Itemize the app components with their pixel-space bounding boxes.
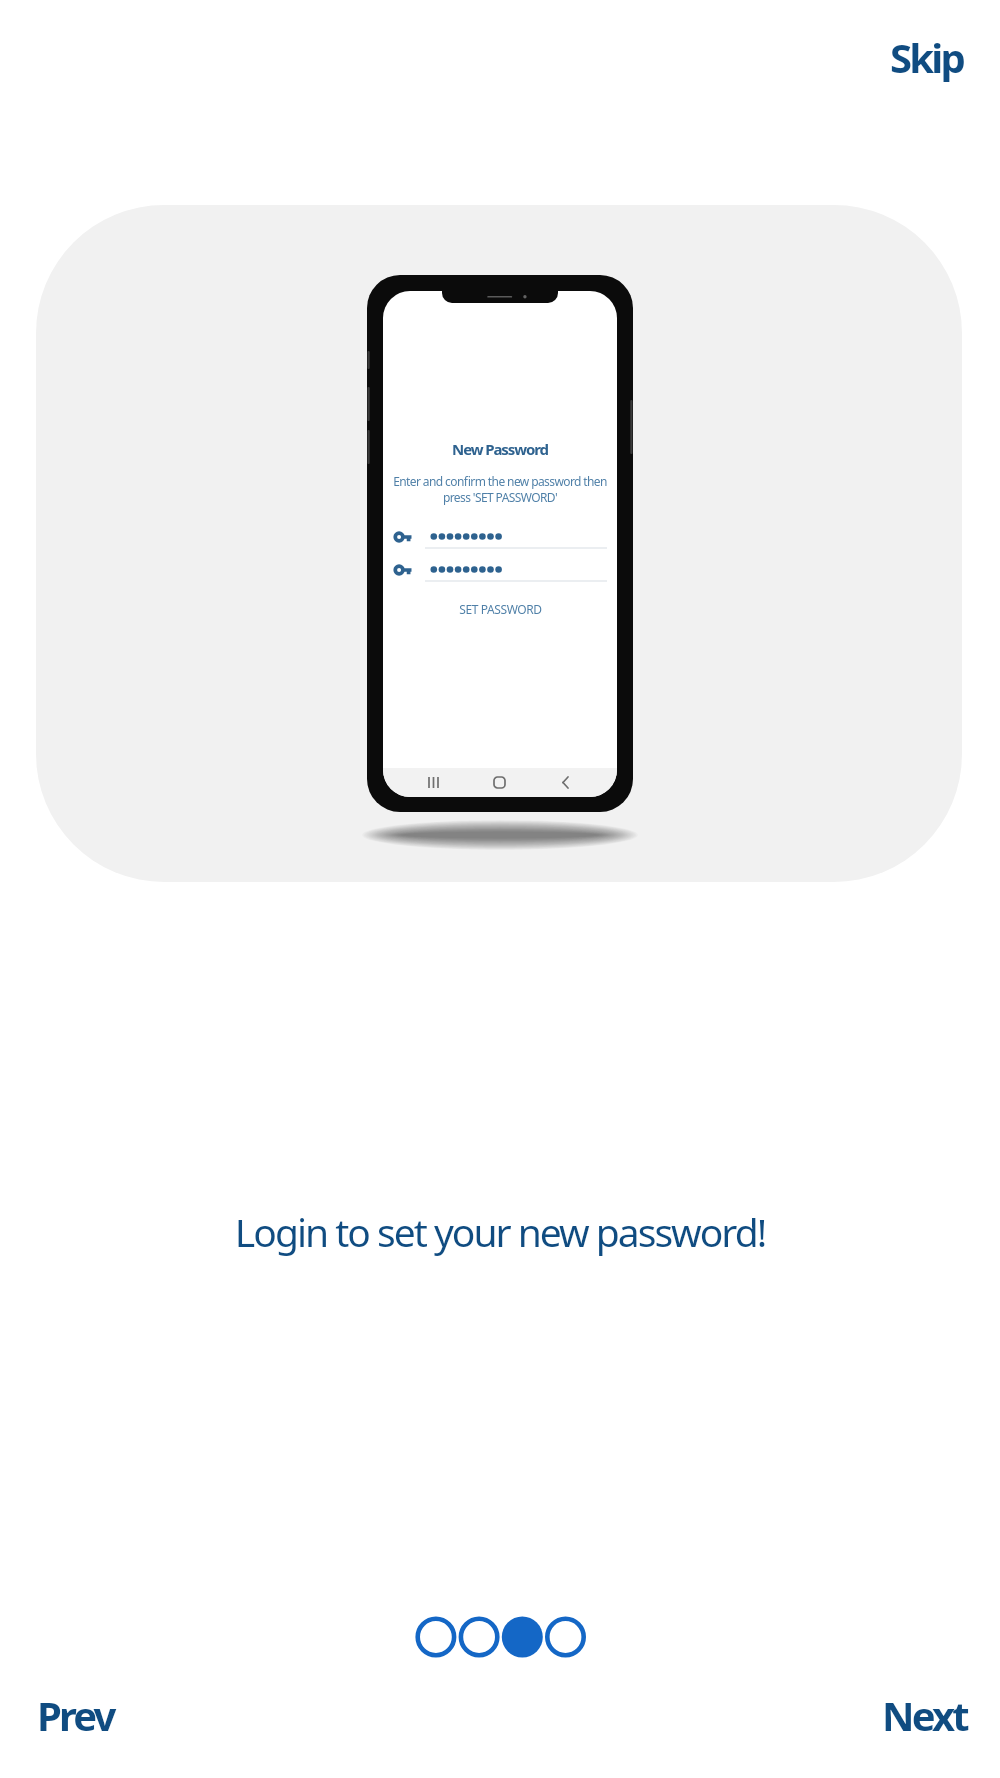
staticText: New Password [383, 439, 617, 459]
staticText: Prev [37, 1688, 114, 1742]
button[interactable]: Prev [19, 1664, 132, 1766]
button[interactable]: Next [864, 1664, 985, 1766]
staticText: Login to set your new password! [0, 1205, 1000, 1258]
staticText: Skip [890, 30, 963, 84]
button[interactable]: SET PASSWORD [383, 597, 617, 621]
staticText: SET PASSWORD [459, 601, 542, 617]
staticText: Enter and confirm the new password then … [383, 473, 617, 506]
button[interactable]: Skip [872, 6, 981, 108]
staticText: Next [882, 1688, 967, 1742]
other: Page 3 of 4 [405, 1608, 595, 1666]
